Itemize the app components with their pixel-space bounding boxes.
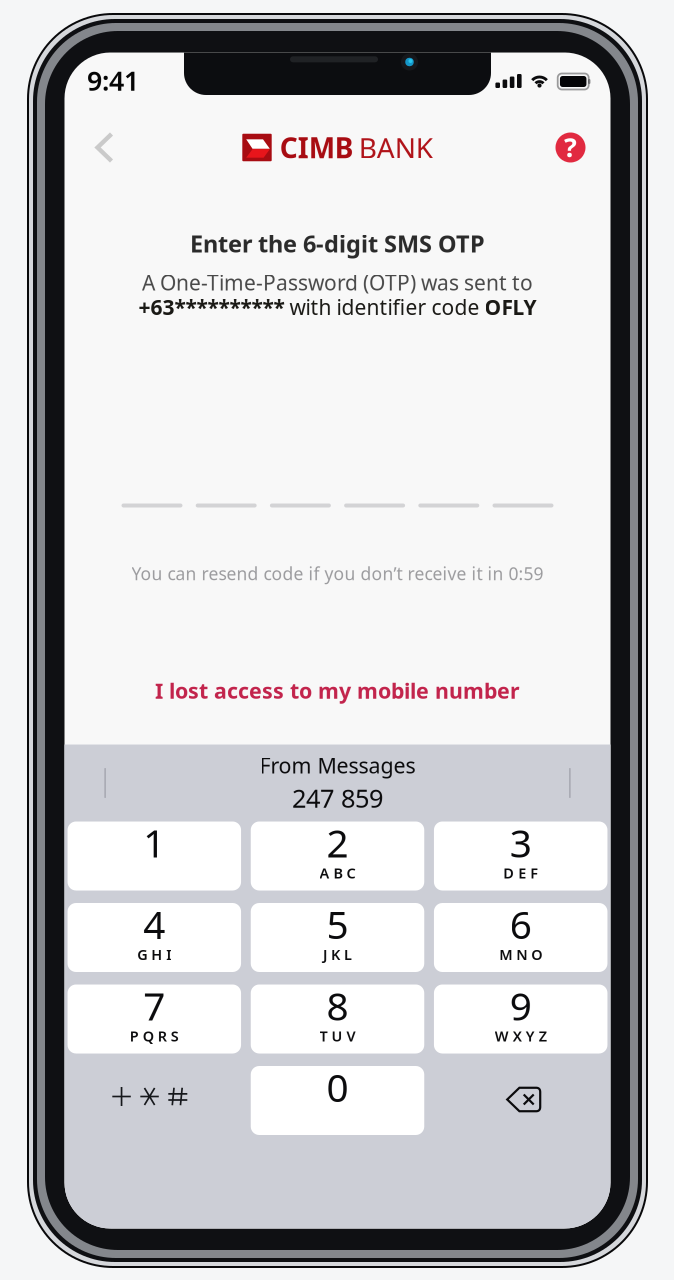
button[interactable]: 9 (434, 984, 607, 1053)
staticText: From Messages (259, 751, 415, 780)
staticText: 8 (326, 979, 348, 1032)
staticText: 6 (510, 898, 532, 950)
staticText: 3 (510, 816, 532, 869)
staticText: 0 (326, 1061, 348, 1113)
staticText: +63********** with identifier code OFLY (138, 293, 536, 321)
button[interactable]: 2 (251, 821, 424, 890)
staticText: 4 (143, 898, 165, 950)
staticText: 9:41 (87, 63, 139, 98)
staticText: Enter the 6-digit SMS OTP (190, 227, 485, 259)
button[interactable]: Delete (434, 1066, 607, 1135)
button[interactable]: 8 (251, 984, 424, 1053)
button[interactable]: 7 (68, 984, 241, 1053)
staticText: D E F (503, 863, 538, 883)
staticText: CIMB (280, 129, 354, 166)
staticText: 1 (143, 816, 165, 869)
button[interactable]: 0 (251, 1066, 424, 1135)
button[interactable]: 4 (68, 903, 241, 972)
staticText: 247 859 (292, 781, 383, 815)
button[interactable]: 1 (68, 821, 241, 890)
staticText: A B C (319, 863, 355, 883)
staticText: 9 (510, 979, 532, 1032)
button[interactable]: 6 (434, 903, 607, 972)
button[interactable]: 5 (251, 903, 424, 972)
staticText: M N O (499, 945, 542, 964)
staticText: A One-Time-Password (OTP) was sent to (142, 268, 533, 297)
staticText: G H I (137, 945, 171, 964)
button[interactable]: 3 (434, 821, 607, 890)
staticText: BANK (359, 129, 433, 166)
staticText: 2 (326, 816, 348, 869)
button[interactable]: I lost access to my mobile number (135, 664, 540, 717)
button[interactable]: Back (79, 120, 129, 175)
staticText: I lost access to my mobile number (155, 676, 520, 705)
staticText: P Q R S (130, 1026, 179, 1046)
staticText: J K L (323, 945, 352, 964)
staticText: 7 (143, 979, 165, 1032)
staticText: You can resend code if you don’t receive… (131, 562, 543, 585)
button[interactable]: Help (547, 124, 593, 170)
button[interactable]: Symbols (68, 1066, 241, 1135)
staticText: W X Y Z (495, 1026, 547, 1046)
staticText: 5 (326, 898, 348, 950)
staticText: T U V (319, 1026, 355, 1046)
staticText: ? (564, 129, 577, 165)
